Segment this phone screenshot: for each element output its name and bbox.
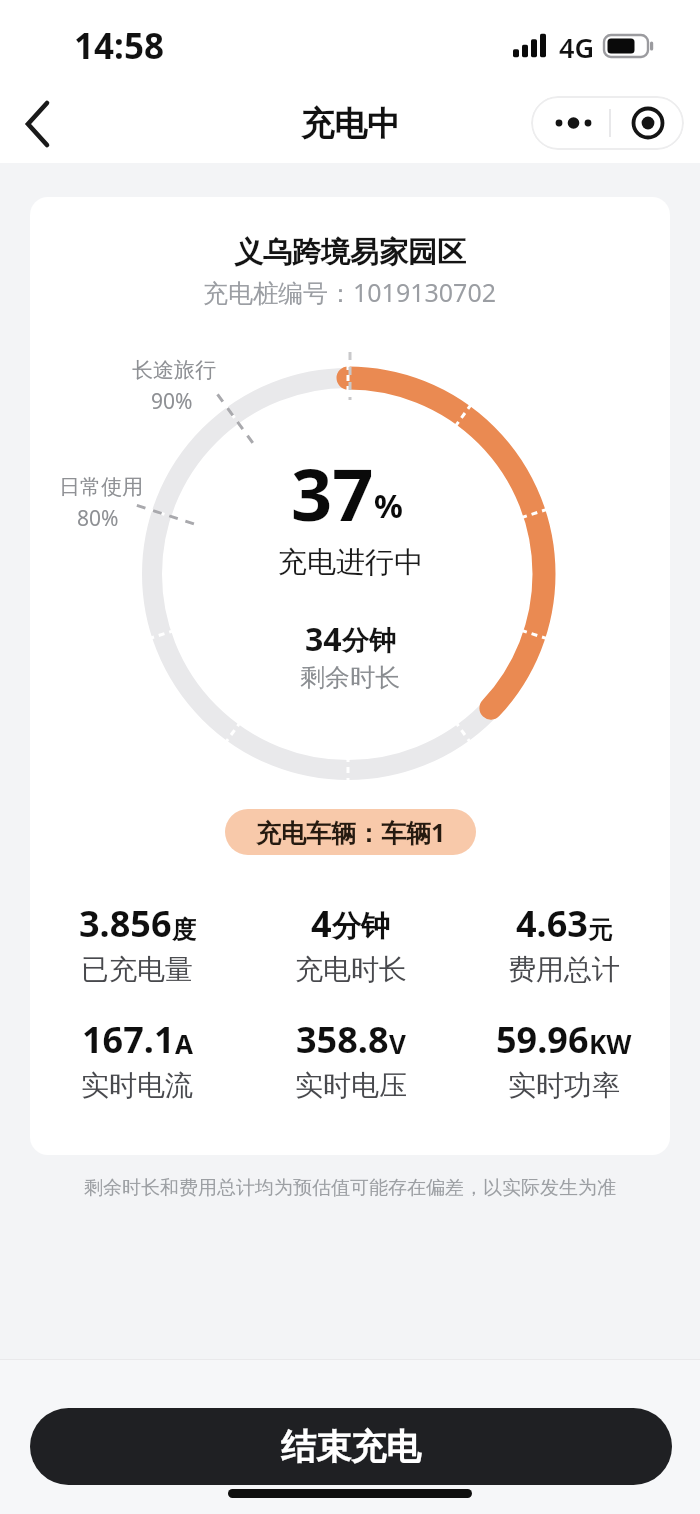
staticText: 日常使用 [59, 474, 143, 500]
staticText: 义乌跨境易家园区 [234, 234, 466, 271]
button[interactable] [531, 96, 607, 150]
staticText: 14:58 [74, 22, 164, 70]
staticText: 分钟 [332, 908, 390, 945]
staticText: 费用总计 [508, 952, 620, 987]
staticText: 充电中 [301, 103, 400, 145]
staticText: 长途旅行 [132, 357, 216, 383]
staticText: 4 [311, 899, 332, 948]
staticText: KW [589, 1026, 632, 1061]
staticText: 元 [588, 915, 612, 945]
staticText: 实时功率 [508, 1068, 620, 1103]
button[interactable] [607, 96, 684, 150]
staticText: 结束充电 [281, 1425, 421, 1469]
staticText: 充电桩编号：1019130702 [203, 275, 497, 309]
staticText: 剩余时长 [300, 662, 400, 693]
staticText: 度 [172, 915, 196, 945]
staticText: 37 [291, 444, 374, 542]
staticText: 充电时长 [295, 952, 407, 987]
staticText: 80% [77, 504, 119, 533]
button[interactable]: 结束充电 [30, 1408, 672, 1485]
staticText: 59.96 [496, 1015, 589, 1064]
button[interactable]: 充电车辆：车辆1 [225, 809, 476, 855]
staticText: 3.856 [79, 899, 172, 948]
staticText: A [175, 1026, 193, 1061]
staticText: 90% [151, 387, 193, 416]
staticText: 4.63 [516, 899, 588, 948]
staticText: 358.8 [296, 1015, 389, 1064]
staticText: 已充电量 [81, 952, 193, 987]
staticText: 实时电流 [81, 1068, 193, 1103]
staticText: 34 [305, 617, 342, 661]
button[interactable] [12, 96, 64, 152]
staticText: 167.1 [82, 1015, 175, 1064]
staticText: 充电车辆：车辆1 [256, 815, 446, 849]
staticText: 实时电压 [295, 1068, 407, 1103]
staticText: 分钟 [342, 624, 396, 658]
staticText: 4G [559, 29, 595, 66]
staticText: V [389, 1026, 406, 1061]
staticText: 剩余时长和费用总计均为预估值可能存在偏差，以实际发生为准 [84, 1176, 616, 1200]
staticText: % [374, 484, 403, 528]
staticText: 充电进行中 [278, 544, 423, 581]
